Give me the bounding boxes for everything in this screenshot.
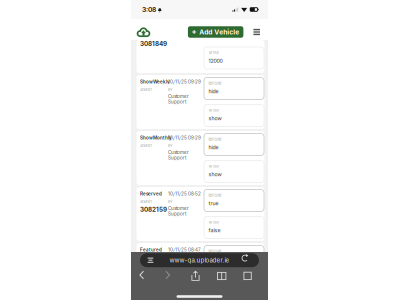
button[interactable]: Tabs	[242, 270, 260, 285]
staticText: BEFORE	[208, 193, 221, 198]
staticText: BEFORE	[208, 81, 221, 86]
button[interactable]: Add Vehicle	[188, 26, 243, 38]
staticText: BEFORE	[208, 249, 221, 254]
staticText: true	[208, 200, 218, 206]
staticText: Add Vehicle	[199, 28, 239, 36]
staticText: 3082159	[140, 206, 167, 213]
button[interactable]: ShowWeekly	[136, 75, 264, 129]
staticText: BY	[168, 144, 172, 148]
button[interactable]: Bookmarks	[216, 270, 234, 285]
staticText: AFTER	[208, 164, 218, 169]
staticText: true	[208, 256, 218, 262]
button[interactable]: Page settings	[143, 254, 158, 267]
staticText: Reserved	[140, 191, 162, 196]
staticText: 3081849	[140, 40, 167, 48]
staticText: ADVERT	[140, 88, 152, 92]
staticText: AFTER	[208, 108, 218, 113]
staticText: show	[208, 115, 221, 121]
button[interactable]: Share	[190, 270, 208, 285]
staticText: 10/11/25 09:29	[168, 79, 201, 84]
staticText: 12000	[208, 58, 222, 64]
staticText: 3:08	[142, 5, 156, 14]
button[interactable]: Back	[138, 270, 156, 285]
staticText: Customer Support	[168, 262, 189, 273]
staticText: AFTER	[208, 276, 218, 281]
staticText: AFTER	[208, 220, 218, 225]
button[interactable]: Featured	[136, 243, 264, 297]
staticText: 10/11/25 09:29	[168, 135, 201, 140]
staticText: 3082159	[140, 262, 167, 269]
button[interactable]: Uploader home	[136, 21, 151, 43]
staticText: show	[208, 171, 221, 177]
staticText: hide	[208, 144, 218, 150]
staticText: ShowWeekly	[140, 79, 170, 84]
staticText: Customer Support	[168, 150, 189, 161]
staticText: ADVERT	[140, 144, 152, 148]
staticText: BY	[168, 88, 172, 92]
staticText: hide	[208, 88, 218, 94]
staticText: Featured	[140, 247, 162, 252]
staticText: ADVERT	[140, 256, 152, 260]
button[interactable]: Forward	[164, 270, 182, 285]
button[interactable]: Menu	[253, 29, 260, 35]
staticText: false	[208, 227, 220, 233]
staticText: BY	[168, 200, 172, 204]
staticText: BEFORE	[208, 137, 221, 142]
staticText: AFTER	[208, 51, 218, 55]
staticText: ADVERT	[140, 200, 152, 204]
staticText: ShowMonthly	[140, 135, 172, 140]
button[interactable]: Reload	[241, 254, 256, 267]
staticText: www-qa.uploader.ie	[169, 256, 229, 264]
staticText: 10/11/25 08:47	[168, 247, 201, 252]
staticText: Customer Support	[168, 206, 189, 217]
button[interactable]: 3081849	[136, 40, 264, 73]
staticText: 10/11/25 08:52	[168, 191, 201, 196]
button[interactable]: Reserved	[136, 187, 264, 241]
staticText: Customer Support	[168, 94, 189, 105]
staticText: BY	[168, 256, 172, 260]
button[interactable]: ShowMonthly	[136, 131, 264, 185]
